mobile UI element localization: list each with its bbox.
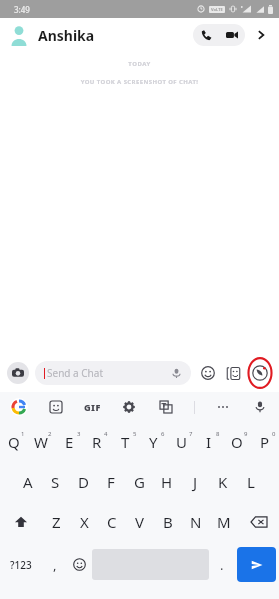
staticText: Y bbox=[149, 432, 158, 452]
staticText: R bbox=[92, 432, 102, 452]
button[interactable]: Profile bbox=[8, 24, 30, 46]
staticText: X bbox=[80, 512, 89, 532]
button[interactable]: Voice input bbox=[251, 398, 269, 416]
button[interactable]: E bbox=[55, 422, 83, 462]
button[interactable]: Call bbox=[193, 24, 219, 46]
staticText: TODAY bbox=[0, 60, 279, 68]
staticText: Z bbox=[52, 512, 61, 532]
staticText: . bbox=[220, 556, 224, 574]
button[interactable]: Shift bbox=[0, 502, 42, 542]
button[interactable]: J bbox=[181, 462, 209, 502]
button[interactable]: Y bbox=[139, 422, 167, 462]
staticText: , bbox=[53, 556, 57, 574]
button[interactable]: O bbox=[223, 422, 251, 462]
staticText: YOU TOOK A SCREENSHOT OF CHAT! bbox=[0, 78, 279, 86]
staticText: T bbox=[121, 432, 130, 452]
button[interactable]: X bbox=[70, 502, 98, 542]
button[interactable]: Video call bbox=[219, 24, 245, 46]
button[interactable]: G bbox=[125, 462, 153, 502]
button[interactable]: L bbox=[237, 462, 265, 502]
other: Voice bbox=[171, 368, 182, 379]
button[interactable]: Sticker bbox=[223, 363, 243, 383]
staticText: 6 bbox=[161, 430, 165, 438]
staticText: 7 bbox=[189, 430, 193, 438]
staticText: 2 bbox=[48, 430, 52, 438]
button[interactable]: Rocket bbox=[248, 361, 272, 385]
staticText: O bbox=[231, 432, 243, 452]
staticText: Q bbox=[8, 432, 20, 452]
staticText: E bbox=[65, 432, 74, 452]
button[interactable]: Google bbox=[10, 398, 28, 416]
staticText: B bbox=[163, 512, 173, 532]
staticText: U bbox=[176, 432, 187, 452]
button[interactable]: Emoji bbox=[198, 363, 218, 383]
button[interactable]: K bbox=[209, 462, 237, 502]
button[interactable]: F bbox=[97, 462, 125, 502]
button[interactable]: Emoji bbox=[67, 542, 92, 587]
button[interactable]: V bbox=[126, 502, 154, 542]
staticText: 8 bbox=[216, 430, 220, 438]
staticText: Anshika bbox=[38, 26, 95, 45]
button[interactable]: U bbox=[167, 422, 195, 462]
staticText: A bbox=[23, 472, 33, 492]
staticText: C bbox=[107, 512, 117, 532]
button[interactable]: , bbox=[42, 542, 67, 587]
staticText: ?123 bbox=[10, 558, 32, 572]
staticText: D bbox=[78, 472, 89, 492]
staticText: M bbox=[217, 512, 231, 532]
staticText: V bbox=[135, 512, 145, 532]
button[interactable]: I bbox=[195, 422, 223, 462]
staticText: 1 bbox=[21, 430, 25, 438]
staticText: F bbox=[107, 472, 115, 492]
button[interactable]: Translate bbox=[157, 398, 175, 416]
staticText: K bbox=[218, 472, 228, 492]
button[interactable]: Settings bbox=[120, 398, 138, 416]
button[interactable]: S bbox=[41, 462, 69, 502]
button[interactable]: Camera bbox=[7, 362, 29, 384]
staticText: S bbox=[51, 472, 60, 492]
button[interactable]: N bbox=[182, 502, 210, 542]
staticText: L bbox=[247, 472, 255, 492]
staticText: N bbox=[190, 512, 202, 532]
button[interactable]: A bbox=[14, 462, 41, 502]
staticText: 3 bbox=[77, 430, 81, 438]
staticText: P bbox=[260, 432, 270, 452]
button[interactable]: T bbox=[111, 422, 139, 462]
staticText: VoLTE bbox=[211, 7, 223, 12]
button[interactable]: M bbox=[210, 502, 238, 542]
button[interactable]: Backspace bbox=[238, 502, 279, 542]
button[interactable]: ?123 bbox=[0, 542, 42, 587]
button[interactable]: More options bbox=[214, 398, 232, 416]
button[interactable]: More bbox=[251, 25, 271, 45]
button[interactable]: W bbox=[27, 422, 55, 462]
button[interactable]: Z bbox=[42, 502, 70, 542]
button[interactable]: GIF bbox=[84, 397, 101, 417]
button[interactable]: P bbox=[251, 422, 279, 462]
button[interactable]: Q bbox=[0, 422, 27, 462]
staticText: J bbox=[193, 472, 198, 492]
staticText: W bbox=[34, 432, 48, 452]
staticText: 4 bbox=[104, 430, 108, 438]
staticText: H bbox=[161, 472, 173, 492]
staticText: I bbox=[206, 432, 212, 452]
staticText: Send a Chat bbox=[47, 366, 103, 380]
staticText: 9 bbox=[244, 430, 248, 438]
button[interactable]: H bbox=[153, 462, 181, 502]
button[interactable]: Send a Chat bbox=[35, 361, 191, 385]
button[interactable]: R bbox=[83, 422, 111, 462]
button[interactable]: C bbox=[98, 502, 126, 542]
staticText: 0 bbox=[272, 430, 276, 438]
button[interactable]: Send bbox=[237, 547, 276, 582]
staticText: GIF bbox=[84, 401, 101, 413]
button[interactable]: D bbox=[69, 462, 97, 502]
button[interactable]: B bbox=[154, 502, 182, 542]
staticText: G bbox=[134, 472, 145, 492]
button[interactable]: Sticker bbox=[47, 398, 65, 416]
button[interactable]: . bbox=[209, 542, 234, 587]
staticText: 3:49 bbox=[14, 4, 30, 15]
staticText: 5 bbox=[133, 430, 137, 438]
